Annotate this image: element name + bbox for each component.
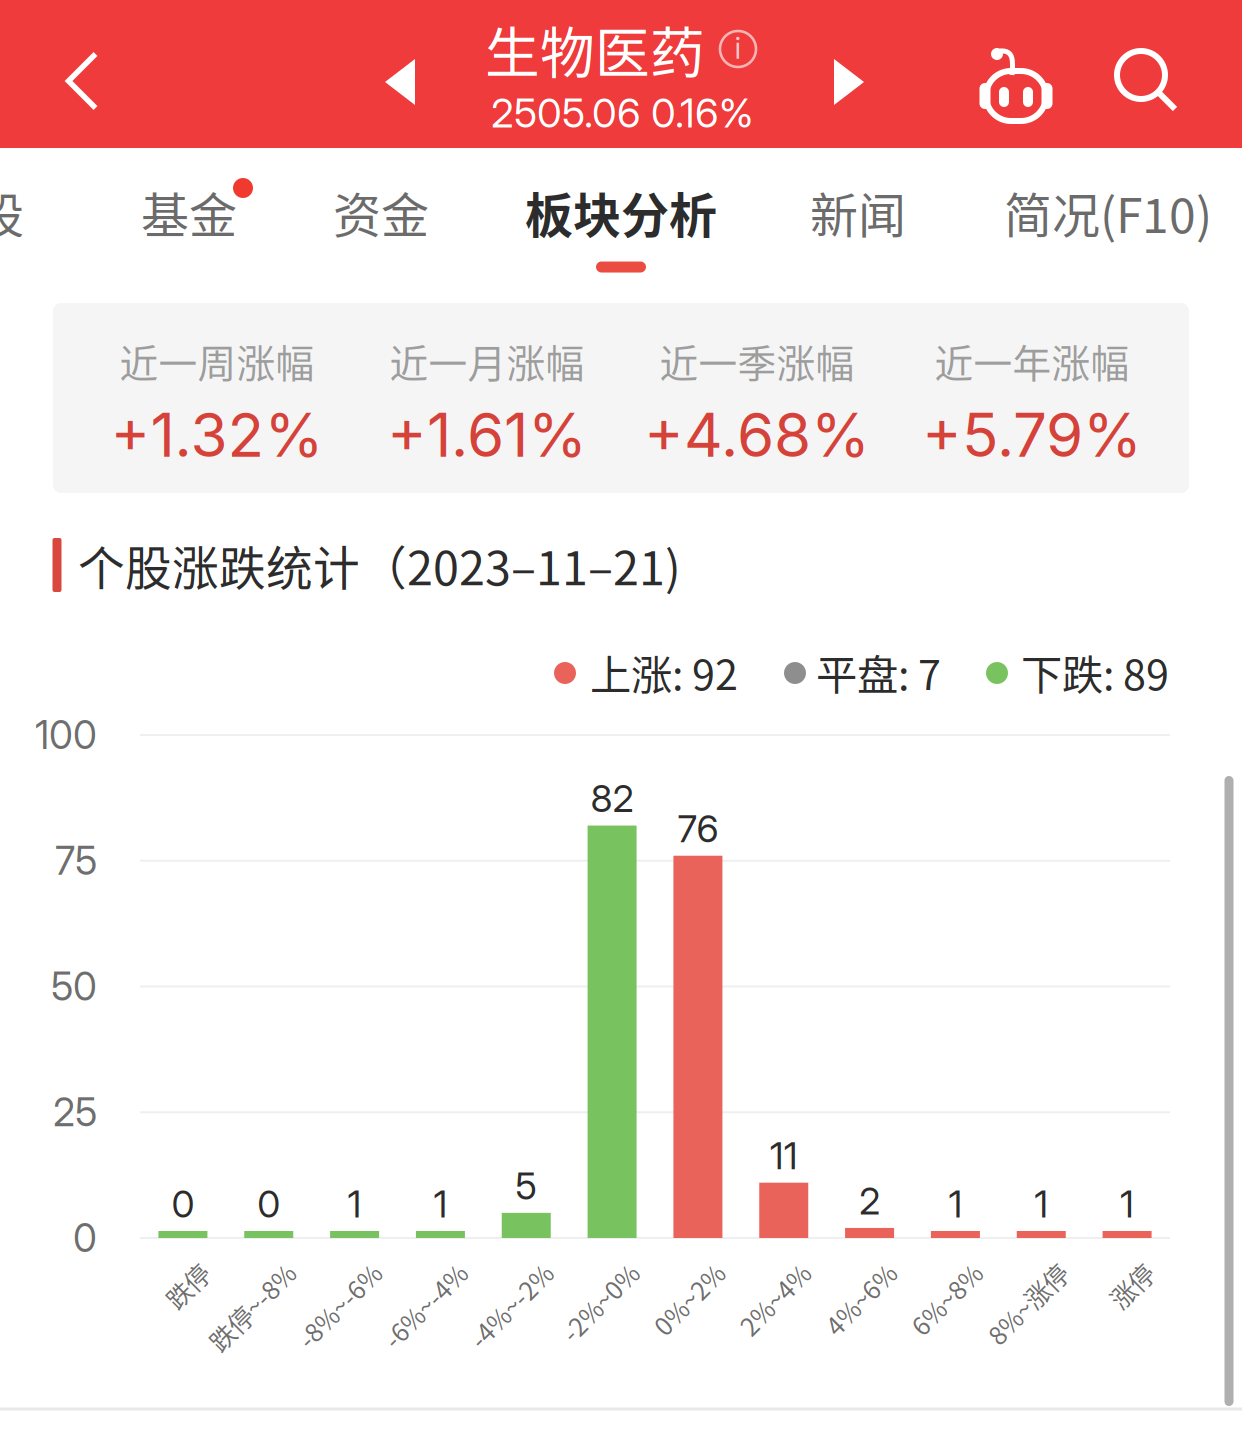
staticText: 资金	[333, 177, 429, 247]
staticText: +5.79%	[922, 399, 1142, 471]
button[interactable]: 基金	[104, 149, 274, 275]
button[interactable]: Next sector	[799, 8, 899, 156]
staticText: 新闻	[810, 177, 906, 247]
staticText: 0	[257, 1181, 280, 1227]
staticText: 平盘: 7	[816, 642, 941, 702]
staticText: 2	[859, 1178, 880, 1224]
staticText: +1.32%	[110, 399, 323, 471]
button[interactable]: Search	[1091, 6, 1201, 154]
staticText: 76	[677, 806, 718, 851]
staticText: i	[734, 30, 741, 66]
staticText: +1.61%	[387, 399, 587, 471]
button[interactable]: AI assistant	[961, 14, 1071, 162]
staticText: 1	[433, 1181, 447, 1227]
staticText: 75	[55, 837, 97, 884]
button[interactable]: Back	[22, 7, 142, 155]
staticText: +4.68%	[644, 399, 870, 471]
button[interactable]: Previous sector	[350, 8, 450, 156]
staticText: 基金	[141, 177, 237, 247]
staticText: 近一周涨幅	[119, 333, 314, 389]
staticText: 2505.06 0.16%	[491, 89, 753, 137]
staticText: 下跌: 89	[1021, 642, 1169, 702]
button[interactable]: 简况(F10)	[968, 149, 1242, 275]
staticText: 1	[1120, 1181, 1134, 1227]
staticText: 25	[53, 1089, 97, 1136]
button[interactable]: 资金	[296, 149, 466, 275]
staticText: 近一月涨幅	[389, 333, 584, 389]
staticText: 1	[348, 1181, 362, 1227]
staticText: 近一年涨幅	[934, 333, 1129, 389]
staticText: 板块分析	[525, 177, 717, 247]
staticText: 个股涨跌统计（2023–11–21)	[78, 531, 681, 599]
staticText: 1	[948, 1181, 962, 1227]
staticText: 近一季涨幅	[659, 333, 854, 389]
staticText: 生物医药	[485, 9, 705, 89]
staticText: 50	[51, 963, 97, 1010]
staticText: 股	[0, 177, 24, 247]
staticText: 0	[73, 1215, 97, 1261]
staticText: 11	[770, 1133, 798, 1178]
button[interactable]: 股	[0, 149, 70, 275]
staticText: 上涨: 92	[590, 642, 738, 702]
staticText: 82	[591, 776, 634, 821]
staticText: 1	[1034, 1181, 1048, 1227]
staticText: 简况(F10)	[1004, 177, 1212, 247]
button[interactable]: 新闻	[773, 149, 943, 275]
button[interactable]: 板块分析	[491, 149, 751, 275]
staticText: 5	[515, 1163, 537, 1208]
staticText: 0	[171, 1181, 194, 1227]
staticText: 100	[35, 712, 97, 758]
